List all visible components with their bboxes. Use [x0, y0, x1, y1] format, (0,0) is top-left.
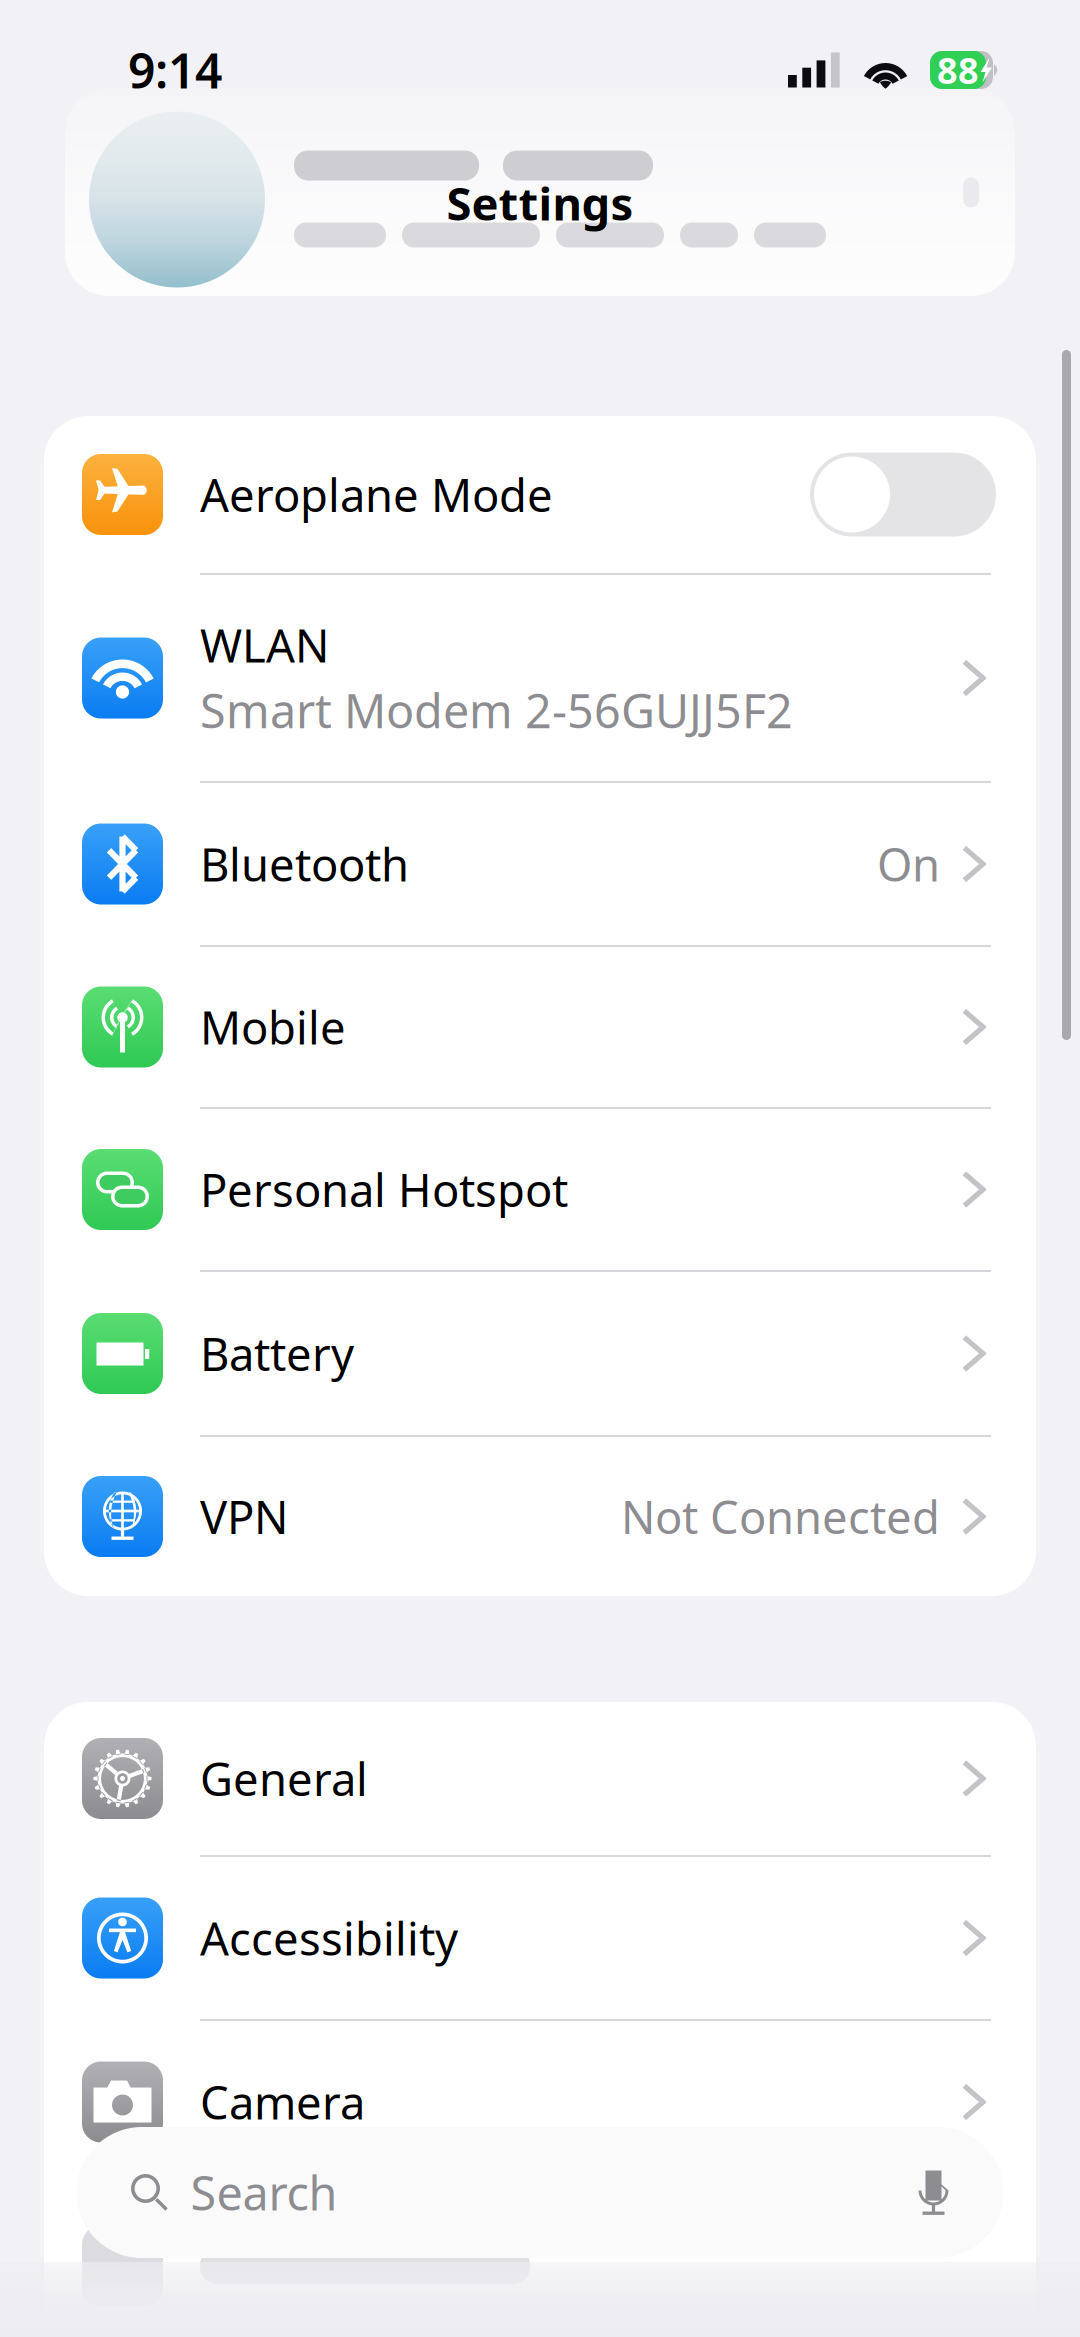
- button[interactable]: Aeroplane Mode: [44, 416, 1036, 573]
- button[interactable]: Control Centre: [44, 2185, 1036, 2337]
- staticText: General: [200, 1748, 368, 1809]
- staticText: VPN: [200, 1486, 288, 1547]
- button[interactable]: WLAN: [44, 575, 1036, 781]
- staticText: Smart Modem 2-56GUJJ5F2: [200, 679, 793, 741]
- staticText: Battery: [200, 1323, 354, 1384]
- staticText: Not Connected: [621, 1486, 940, 1547]
- staticText: Search: [190, 2161, 337, 2223]
- button[interactable]: Bluetooth: [44, 783, 1036, 945]
- staticText: Mobile: [200, 997, 346, 1057]
- button[interactable]: VPN: [44, 1437, 1036, 1596]
- staticText: Settings: [446, 173, 633, 233]
- button[interactable]: Personal Hotspot: [44, 1109, 1036, 1270]
- button[interactable]: Camera: [44, 2021, 1036, 2183]
- staticText: Bluetooth: [200, 834, 409, 894]
- button[interactable]: Battery: [44, 1272, 1036, 1435]
- staticText: Accessibility: [200, 1908, 458, 1968]
- button[interactable]: Search: [76, 2127, 1003, 2258]
- button[interactable]: Mobile: [44, 947, 1036, 1107]
- button[interactable]: General: [44, 1702, 1036, 1855]
- button[interactable]: Accessibility: [44, 1857, 1036, 2019]
- staticText: On: [877, 834, 940, 894]
- staticText: WLAN: [200, 615, 329, 675]
- staticText: 9:14: [128, 38, 222, 102]
- staticText: 88: [937, 46, 979, 94]
- staticText: Camera: [200, 2072, 365, 2132]
- staticText: Aeroplane Mode: [200, 464, 553, 525]
- staticText: Personal Hotspot: [200, 1159, 568, 1220]
